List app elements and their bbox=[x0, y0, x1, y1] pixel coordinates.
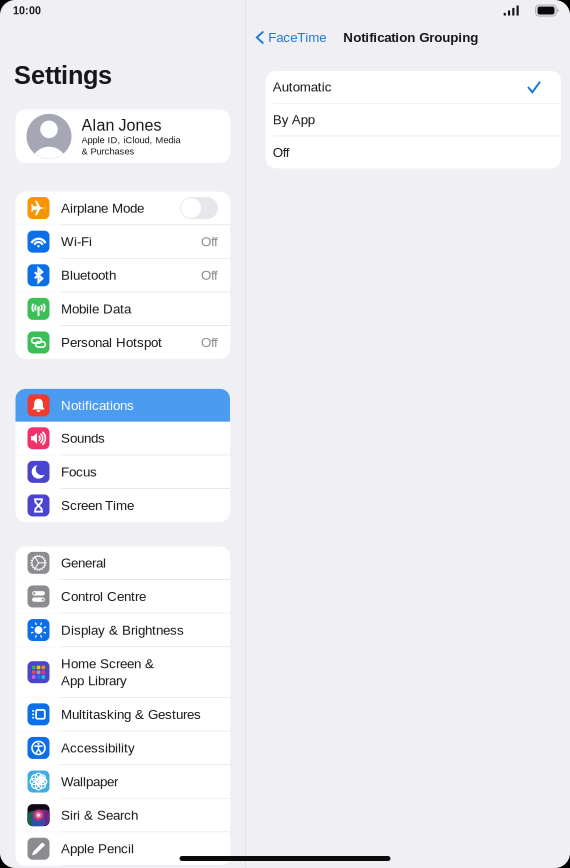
button[interactable]: Automatic bbox=[266, 71, 561, 103]
staticText: Alan Jones bbox=[81, 116, 161, 134]
staticText: Off bbox=[201, 268, 218, 282]
button[interactable]: Apple Pencil bbox=[15, 832, 230, 865]
staticText: Notification Grouping bbox=[343, 30, 478, 45]
button[interactable]: Control Centre bbox=[15, 580, 230, 613]
button[interactable]: Alan Jones bbox=[15, 110, 230, 163]
staticText: Off bbox=[201, 234, 218, 249]
staticText: Focus bbox=[61, 465, 97, 479]
button[interactable]: General bbox=[15, 546, 230, 579]
staticText: Off bbox=[273, 145, 290, 160]
staticText: By App bbox=[273, 112, 315, 127]
button[interactable]: Wallpaper bbox=[15, 765, 230, 798]
staticText: Multitasking & Gestures bbox=[61, 707, 201, 722]
staticText: & Purchases bbox=[81, 146, 134, 156]
staticText: Personal Hotspot bbox=[61, 335, 162, 350]
staticText: Wallpaper bbox=[61, 774, 118, 789]
button[interactable]: Multitasking & Gestures bbox=[15, 698, 230, 731]
staticText: Screen Time bbox=[61, 498, 134, 513]
staticText: Wi-Fi bbox=[61, 234, 92, 249]
staticText: Settings bbox=[14, 61, 112, 89]
staticText: App Library bbox=[61, 673, 127, 688]
staticText: Home Screen & bbox=[61, 656, 154, 671]
staticText: Airplane Mode bbox=[61, 201, 144, 215]
staticText: Accessibility bbox=[61, 741, 135, 755]
staticText: Siri & Search bbox=[61, 808, 138, 822]
button[interactable]: Siri & Search bbox=[15, 799, 230, 832]
button[interactable]: Display & Brightness bbox=[15, 614, 230, 646]
staticText: General bbox=[61, 556, 106, 570]
button[interactable]: Accessibility bbox=[15, 731, 230, 764]
staticText: Notifications bbox=[61, 398, 134, 413]
staticText: Mobile Data bbox=[61, 302, 131, 316]
staticText: Control Centre bbox=[61, 589, 146, 604]
staticText: Apple ID, iCloud, Media bbox=[81, 135, 180, 145]
staticText: 10:00 bbox=[13, 5, 41, 16]
staticText: FaceTime bbox=[268, 30, 326, 45]
button[interactable]: Off bbox=[266, 136, 561, 168]
button[interactable]: Wi-Fi bbox=[15, 225, 230, 258]
staticText: Apple Pencil bbox=[61, 841, 134, 856]
staticText: Sounds bbox=[61, 431, 105, 445]
button[interactable]: Focus bbox=[15, 455, 230, 488]
button[interactable]: By App bbox=[266, 104, 561, 136]
button[interactable]: Screen Time bbox=[15, 489, 230, 522]
button[interactable]: Bluetooth bbox=[15, 259, 230, 292]
button[interactable]: Home Screen & bbox=[15, 647, 230, 697]
staticText: Bluetooth bbox=[61, 268, 116, 282]
button[interactable]: Notifications bbox=[15, 389, 230, 422]
staticText: Display & Brightness bbox=[61, 623, 184, 637]
button[interactable]: Personal Hotspot bbox=[15, 326, 230, 359]
button[interactable]: Airplane Mode bbox=[15, 192, 230, 224]
button[interactable]: FaceTime bbox=[257, 30, 326, 45]
button[interactable]: Sounds bbox=[15, 422, 230, 455]
staticText: Off bbox=[201, 335, 218, 350]
staticText: Automatic bbox=[273, 80, 332, 94]
button[interactable]: Mobile Data bbox=[15, 292, 230, 325]
